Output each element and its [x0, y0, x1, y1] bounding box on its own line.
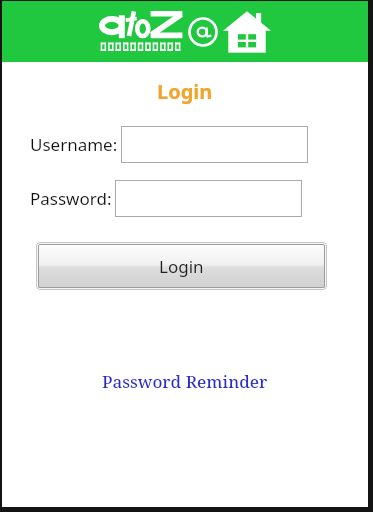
button[interactable]: Password input	[115, 180, 302, 217]
staticText: Password:	[30, 187, 112, 210]
button[interactable]: Username input	[121, 126, 308, 163]
staticText: Login	[159, 255, 204, 278]
staticText: Username:	[30, 133, 118, 156]
staticText: Login	[157, 78, 213, 105]
staticText: Password Reminder	[102, 370, 268, 393]
other: Home	[223, 10, 271, 54]
button[interactable]: Password Reminder	[94, 367, 276, 396]
button[interactable]: Login	[38, 244, 325, 288]
